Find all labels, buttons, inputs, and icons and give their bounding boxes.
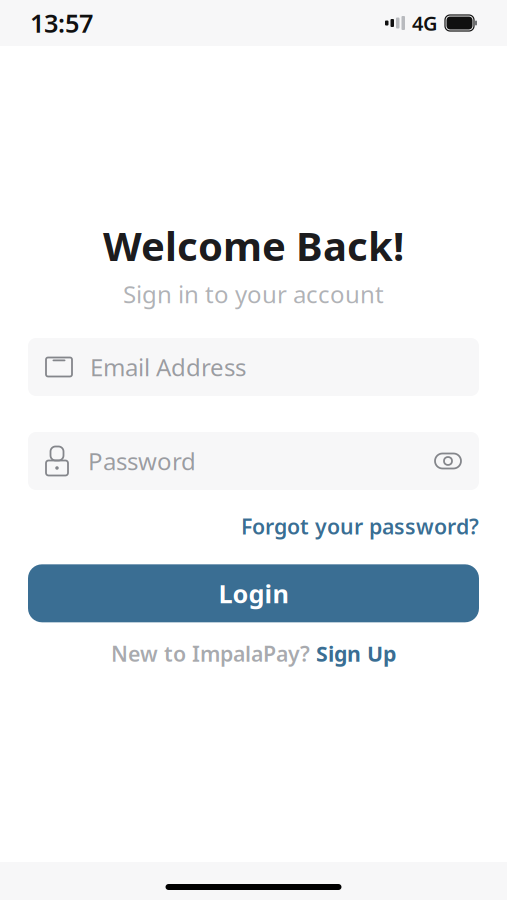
staticText: Sign in to your account bbox=[123, 278, 384, 310]
staticText: 4G bbox=[412, 10, 438, 36]
staticText: Sign Up bbox=[316, 639, 396, 668]
button[interactable]: Forgot your password? bbox=[241, 512, 479, 540]
staticText: Email Address bbox=[90, 351, 246, 383]
staticText: Password bbox=[88, 445, 196, 477]
staticText: Forgot your password? bbox=[241, 512, 479, 540]
staticText: New to ImpalaPay? bbox=[111, 639, 310, 668]
staticText: 13:57 bbox=[30, 6, 93, 40]
button[interactable]: Email Address bbox=[28, 338, 479, 396]
button[interactable]: Password bbox=[28, 432, 479, 490]
button[interactable]: Sign Up bbox=[316, 639, 396, 668]
staticText: Welcome Back! bbox=[103, 219, 404, 272]
button[interactable]: Login bbox=[28, 564, 479, 622]
staticText: Login bbox=[218, 576, 288, 610]
